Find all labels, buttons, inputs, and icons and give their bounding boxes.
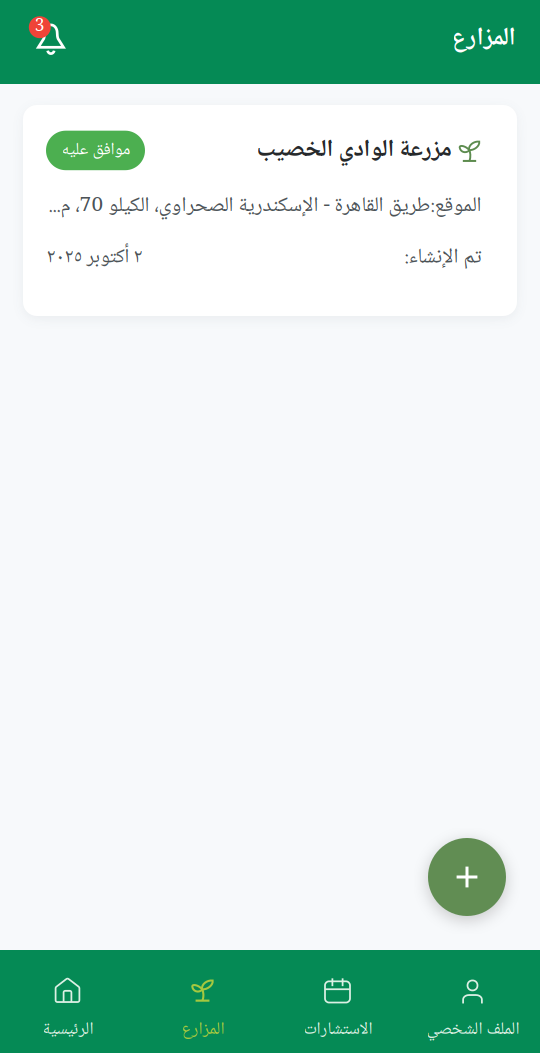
staticText: المزارع	[451, 17, 515, 60]
button[interactable]: Notifications	[14, 15, 68, 69]
button[interactable]: Add farm	[428, 838, 506, 916]
staticText: الرئيسية	[42, 1015, 93, 1045]
staticText: تم الإنشاء:	[404, 240, 481, 276]
staticText: 3	[35, 12, 45, 42]
staticText: المزارع	[181, 1015, 224, 1045]
staticText: الملف الشخصي	[426, 1015, 519, 1045]
staticText: الموقع:طريق القاهرة - الإسكندرية الصحراو…	[48, 189, 481, 224]
button[interactable]: الملف الشخصي	[405, 950, 540, 1053]
button[interactable]: موافق عليه	[23, 105, 517, 316]
staticText: موافق عليه	[61, 136, 130, 165]
button[interactable]: المزارع	[135, 950, 270, 1053]
staticText: مزرعة الوادي الخصيب	[256, 130, 451, 171]
staticText: ٢ أكتوبر ٢٠٢٥	[46, 241, 142, 275]
staticText: الاستشارات	[303, 1015, 372, 1045]
button[interactable]: الرئيسية	[0, 950, 135, 1053]
button[interactable]: الاستشارات	[270, 950, 405, 1053]
